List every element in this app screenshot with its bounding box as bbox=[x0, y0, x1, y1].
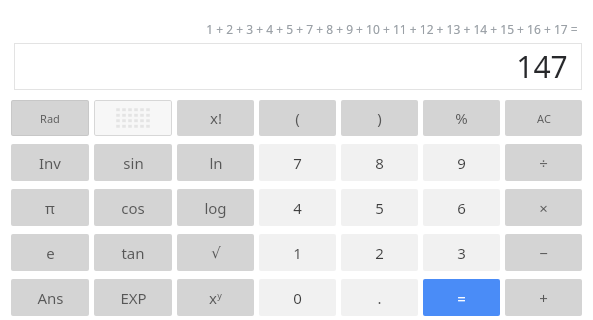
button[interactable]: 3 bbox=[423, 234, 500, 271]
staticText: ( bbox=[295, 108, 300, 128]
staticText: tan bbox=[121, 243, 145, 263]
button[interactable]: Ans bbox=[11, 279, 89, 316]
button[interactable]: tan bbox=[94, 234, 172, 271]
staticText: cos bbox=[121, 198, 145, 218]
staticText: y bbox=[217, 289, 222, 301]
button[interactable]: x! bbox=[177, 100, 254, 136]
staticText: √ bbox=[211, 244, 221, 261]
staticText: 0 bbox=[293, 288, 302, 308]
staticText: ) bbox=[377, 108, 382, 128]
button[interactable]: . bbox=[341, 279, 418, 316]
button[interactable]: e bbox=[11, 234, 89, 271]
staticText: e bbox=[46, 243, 55, 263]
button[interactable]: Inv bbox=[11, 144, 89, 181]
staticText: × bbox=[539, 198, 548, 218]
button[interactable]: 0 bbox=[259, 279, 336, 316]
staticText: log bbox=[204, 198, 227, 218]
staticText: x bbox=[209, 288, 217, 308]
staticText: EXP bbox=[120, 288, 147, 308]
staticText: 1 bbox=[293, 243, 302, 263]
staticText: = bbox=[457, 288, 466, 308]
staticText: x! bbox=[210, 108, 222, 128]
staticText: + bbox=[539, 288, 548, 308]
staticText: 5 bbox=[375, 198, 384, 218]
staticText: 8 bbox=[375, 153, 384, 173]
button[interactable]: 147 bbox=[14, 43, 582, 90]
button[interactable]: 5 bbox=[341, 189, 418, 226]
button[interactable]: sin bbox=[94, 144, 172, 181]
staticText: π bbox=[45, 198, 55, 218]
staticText: − bbox=[539, 243, 548, 263]
staticText: 9 bbox=[457, 153, 466, 173]
button[interactable]: ) bbox=[341, 100, 418, 136]
button[interactable]: √ bbox=[177, 234, 254, 271]
button[interactable]: = bbox=[423, 279, 500, 316]
button[interactable]: 1 bbox=[259, 234, 336, 271]
button[interactable]: 2 bbox=[341, 234, 418, 271]
button[interactable]: Keypad bbox=[94, 100, 172, 136]
button[interactable]: π bbox=[11, 189, 89, 226]
button[interactable]: EXP bbox=[94, 279, 172, 316]
button[interactable]: AC bbox=[505, 100, 582, 136]
button[interactable]: ( bbox=[259, 100, 336, 136]
button[interactable]: × bbox=[505, 189, 582, 226]
button[interactable]: x bbox=[177, 279, 254, 316]
staticText: Inv bbox=[39, 153, 61, 173]
staticText: 4 bbox=[293, 198, 302, 218]
button[interactable]: % bbox=[423, 100, 500, 136]
staticText: . bbox=[377, 288, 382, 308]
staticText: 1 + 2 + 3 + 4 + 5 + 7 + 8 + 9 + 10 + 11 … bbox=[206, 21, 578, 37]
staticText: ÷ bbox=[539, 153, 548, 173]
button[interactable]: 6 bbox=[423, 189, 500, 226]
staticText: Ans bbox=[37, 288, 64, 308]
button[interactable]: 8 bbox=[341, 144, 418, 181]
staticText: 2 bbox=[375, 243, 384, 263]
staticText: Rad bbox=[40, 111, 60, 126]
button[interactable]: ln bbox=[177, 144, 254, 181]
button[interactable]: 7 bbox=[259, 144, 336, 181]
staticText: ln bbox=[209, 153, 223, 173]
staticText: AC bbox=[537, 111, 551, 126]
staticText: % bbox=[455, 108, 468, 128]
button[interactable]: Rad bbox=[11, 100, 89, 136]
button[interactable]: log bbox=[177, 189, 254, 226]
staticText: 147 bbox=[516, 46, 568, 87]
staticText: sin bbox=[123, 153, 144, 173]
button[interactable]: ÷ bbox=[505, 144, 582, 181]
staticText: 3 bbox=[457, 243, 466, 263]
staticText: 7 bbox=[293, 153, 302, 173]
button[interactable]: 4 bbox=[259, 189, 336, 226]
button[interactable]: cos bbox=[94, 189, 172, 226]
button[interactable]: + bbox=[505, 279, 582, 316]
button[interactable]: − bbox=[505, 234, 582, 271]
button[interactable]: 9 bbox=[423, 144, 500, 181]
staticText: 6 bbox=[457, 198, 466, 218]
